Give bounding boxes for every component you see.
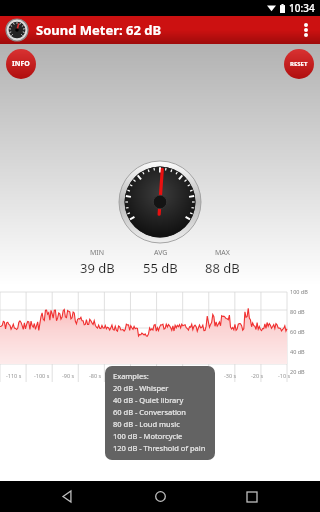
staticText: 20 dB <box>290 368 305 375</box>
staticText: MIN <box>90 248 105 258</box>
staticText: -90 s <box>62 372 75 379</box>
staticText: INFO <box>12 59 30 69</box>
staticText: -30 s <box>224 372 237 379</box>
staticText: 10:34 <box>289 1 315 15</box>
button[interactable]: Recents <box>228 481 276 512</box>
staticText: AVG <box>154 248 168 258</box>
staticText: -70 s <box>116 372 129 379</box>
staticText: -20 s <box>251 372 264 379</box>
button[interactable]: More options <box>292 16 320 44</box>
staticText: Examples: <box>113 371 149 381</box>
staticText: 80 dB - Loud music <box>113 419 180 429</box>
button[interactable]: RESET <box>284 49 314 79</box>
staticText: -80 s <box>89 372 102 379</box>
staticText: -60 s <box>143 372 156 379</box>
button[interactable]: Home <box>136 481 184 512</box>
staticText: 80 dB <box>290 308 305 315</box>
button[interactable]: Back <box>44 481 92 512</box>
staticText: 20 dB - Whisper <box>113 383 169 393</box>
staticText: 100 dB <box>290 288 308 295</box>
staticText: 60 dB - Conversation <box>113 407 186 417</box>
staticText: MAX <box>215 248 230 258</box>
staticText: RESET <box>290 60 308 68</box>
staticText: 55 dB <box>143 259 178 277</box>
staticText: -10 s <box>278 372 291 379</box>
staticText: 40 dB - Quiet library <box>113 395 184 405</box>
staticText: Sound Meter: 62 dB <box>36 21 162 39</box>
staticText: -100 s <box>34 372 50 379</box>
staticText: 39 dB <box>80 259 115 277</box>
staticText: 60 dB <box>290 328 305 335</box>
staticText: 120 dB - Threshold of pain <box>113 443 206 453</box>
button[interactable]: INFO <box>6 49 36 79</box>
staticText: 88 dB <box>205 259 240 277</box>
staticText: -110 s <box>6 372 22 379</box>
staticText: 40 dB <box>290 348 305 355</box>
staticText: 100 dB - Motorcycle <box>113 431 183 441</box>
